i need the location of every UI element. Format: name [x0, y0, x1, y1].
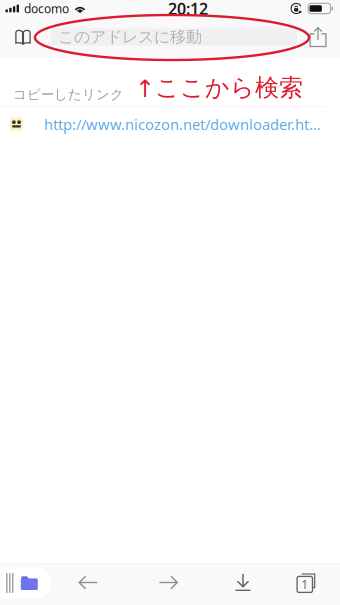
button[interactable]: Bookmarks — [8, 20, 38, 54]
button[interactable]: Forward — [147, 563, 189, 601]
button[interactable]: Back — [67, 563, 109, 601]
button[interactable]: このアドレスに移動 — [38, 28, 304, 45]
staticText: 1 — [301, 576, 308, 592]
button[interactable]: Tabs — [286, 563, 328, 601]
button[interactable]: Tab Group — [0, 567, 52, 598]
staticText: このアドレスに移動 — [58, 27, 202, 47]
button[interactable]: Downloads — [222, 563, 264, 601]
staticText: ↑ここから検索 — [135, 73, 303, 102]
staticText: コピーしたリンク — [13, 86, 124, 103]
staticText: docomo — [24, 0, 69, 16]
button[interactable]: Share — [304, 20, 332, 54]
staticText: 20:12 — [168, 0, 208, 19]
staticText: http://www.nicozon.net/downloader.ht… — [44, 114, 321, 134]
button[interactable]: http://www.nicozon.net/downloader.ht… — [0, 112, 340, 136]
